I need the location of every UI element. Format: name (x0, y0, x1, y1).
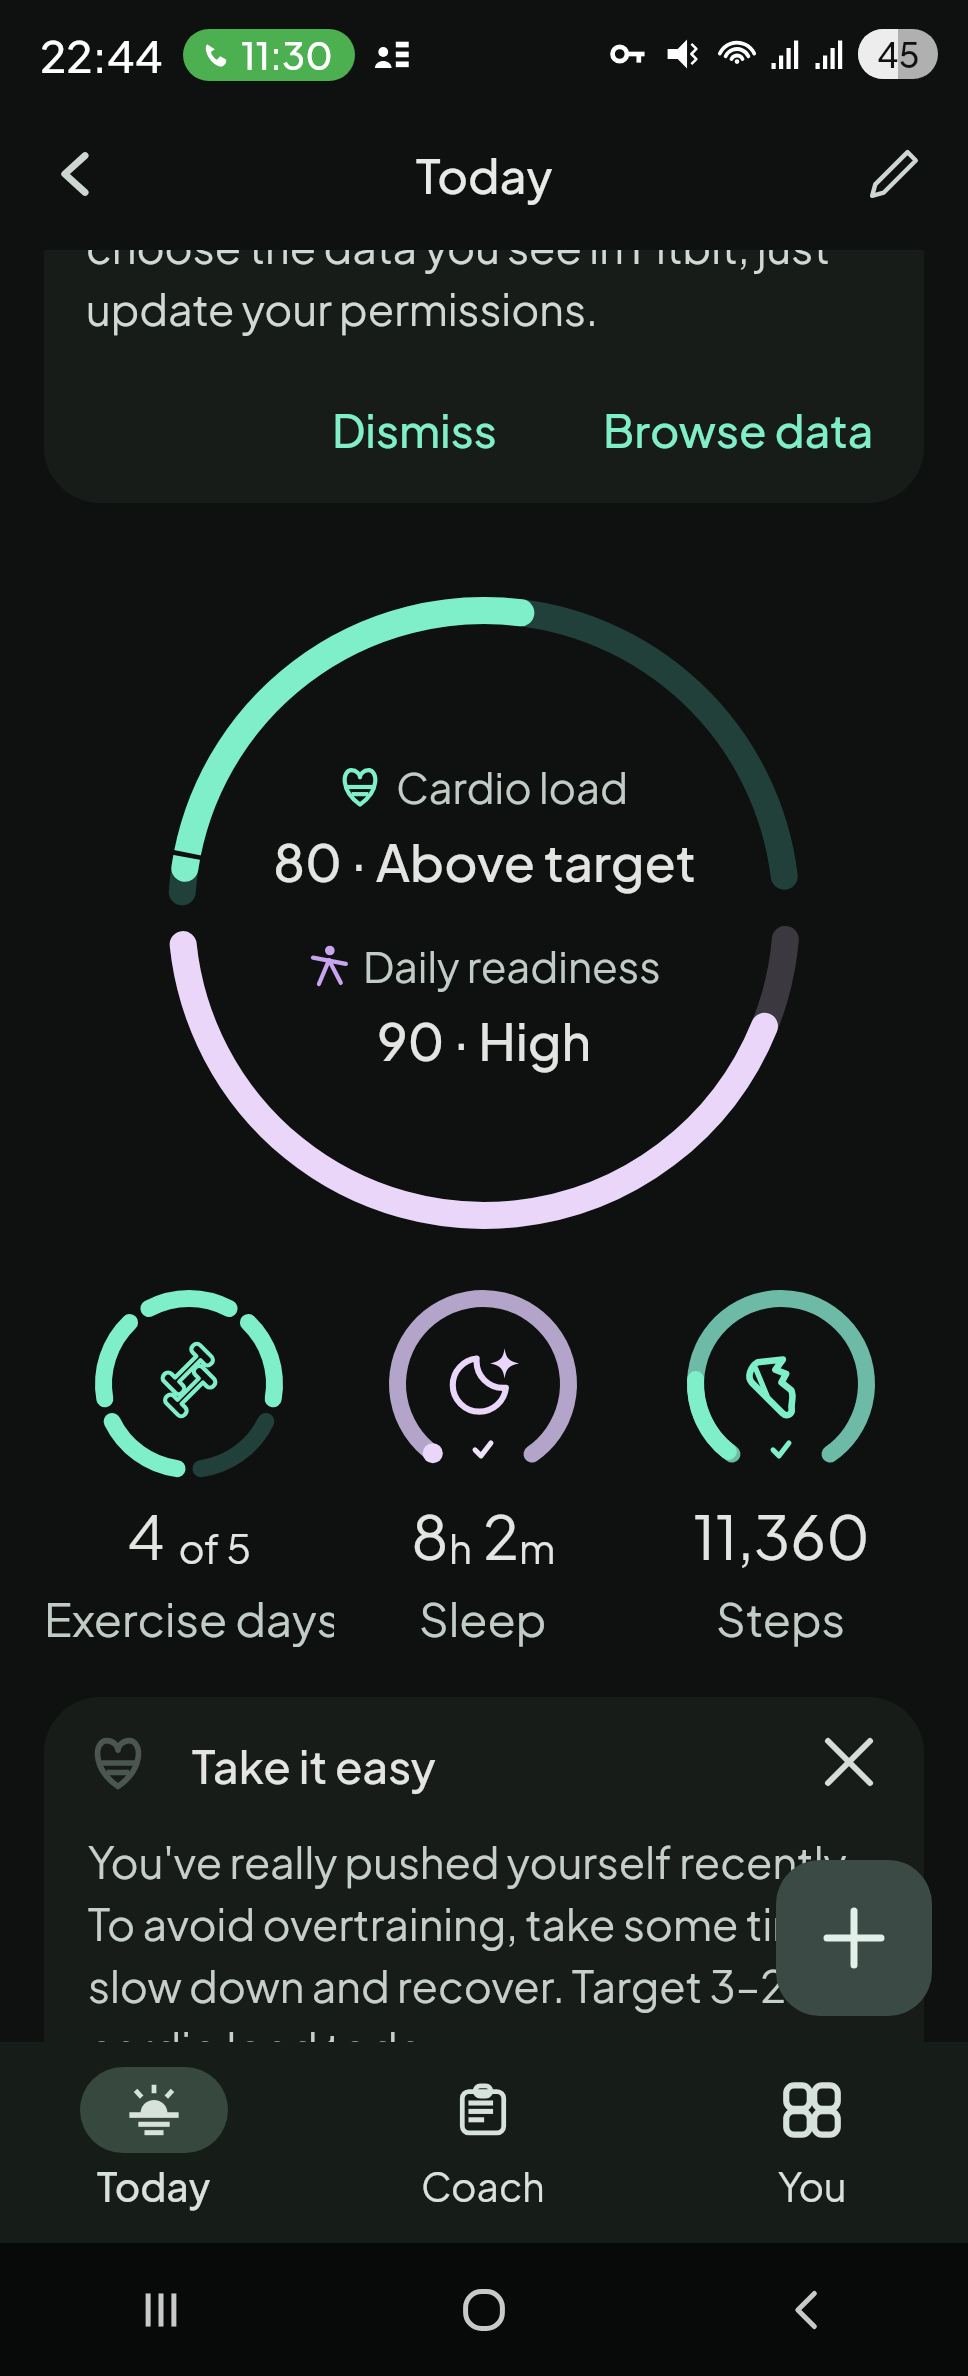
staticText: Exercise days (44, 1589, 334, 1647)
staticText: Browse data (603, 401, 874, 458)
button[interactable]: Close (812, 1725, 886, 1799)
staticText: 11,360 (693, 1498, 870, 1574)
button[interactable]: 11,360 (636, 1282, 926, 1662)
staticText: of 5 (165, 1522, 252, 1572)
staticText: 8 (411, 1498, 449, 1574)
staticText: Today (416, 145, 553, 204)
staticText: h (449, 1522, 472, 1572)
staticText: 2 (483, 1498, 519, 1574)
button[interactable]: Browse data (589, 389, 888, 470)
staticText: You (778, 2162, 847, 2211)
staticText: Daily readiness (363, 939, 661, 992)
button[interactable]: Coach (373, 2042, 593, 2243)
button[interactable]: Dismiss (318, 389, 511, 470)
staticText: choose the data you see in Fitbit, just … (86, 250, 830, 336)
button[interactable]: choose the data you see in Fitbit, just … (44, 250, 924, 503)
staticText: Sleep (419, 1589, 547, 1647)
staticText: 90 · High (377, 1008, 592, 1072)
staticText: Steps (716, 1589, 846, 1647)
button[interactable] (168, 597, 800, 1229)
staticText: 22:44 (40, 27, 163, 82)
staticText: Today (97, 2162, 211, 2211)
button[interactable]: 8 (338, 1282, 628, 1662)
button[interactable]: Edit (852, 132, 936, 216)
staticText: Cardio load (396, 760, 629, 813)
button[interactable]: Add (776, 1860, 932, 2016)
staticText: Take it easy (192, 1737, 436, 1794)
button[interactable]: You (702, 2042, 922, 2243)
staticText: 11:30 (241, 31, 333, 79)
staticText: 45 (877, 33, 920, 76)
button[interactable]: Today (44, 2042, 264, 2243)
staticText: Dismiss (332, 401, 497, 458)
staticText: 80 · Above target (273, 829, 696, 893)
button[interactable]: 4 (44, 1282, 334, 1662)
staticText: 4 (127, 1498, 165, 1574)
staticText: You've really pushed yourself recently. … (88, 1834, 890, 2047)
button[interactable]: Take it easy (44, 1697, 924, 2047)
staticText: Coach (421, 2162, 545, 2211)
button[interactable]: Back (32, 132, 116, 216)
staticText: m (519, 1522, 556, 1572)
